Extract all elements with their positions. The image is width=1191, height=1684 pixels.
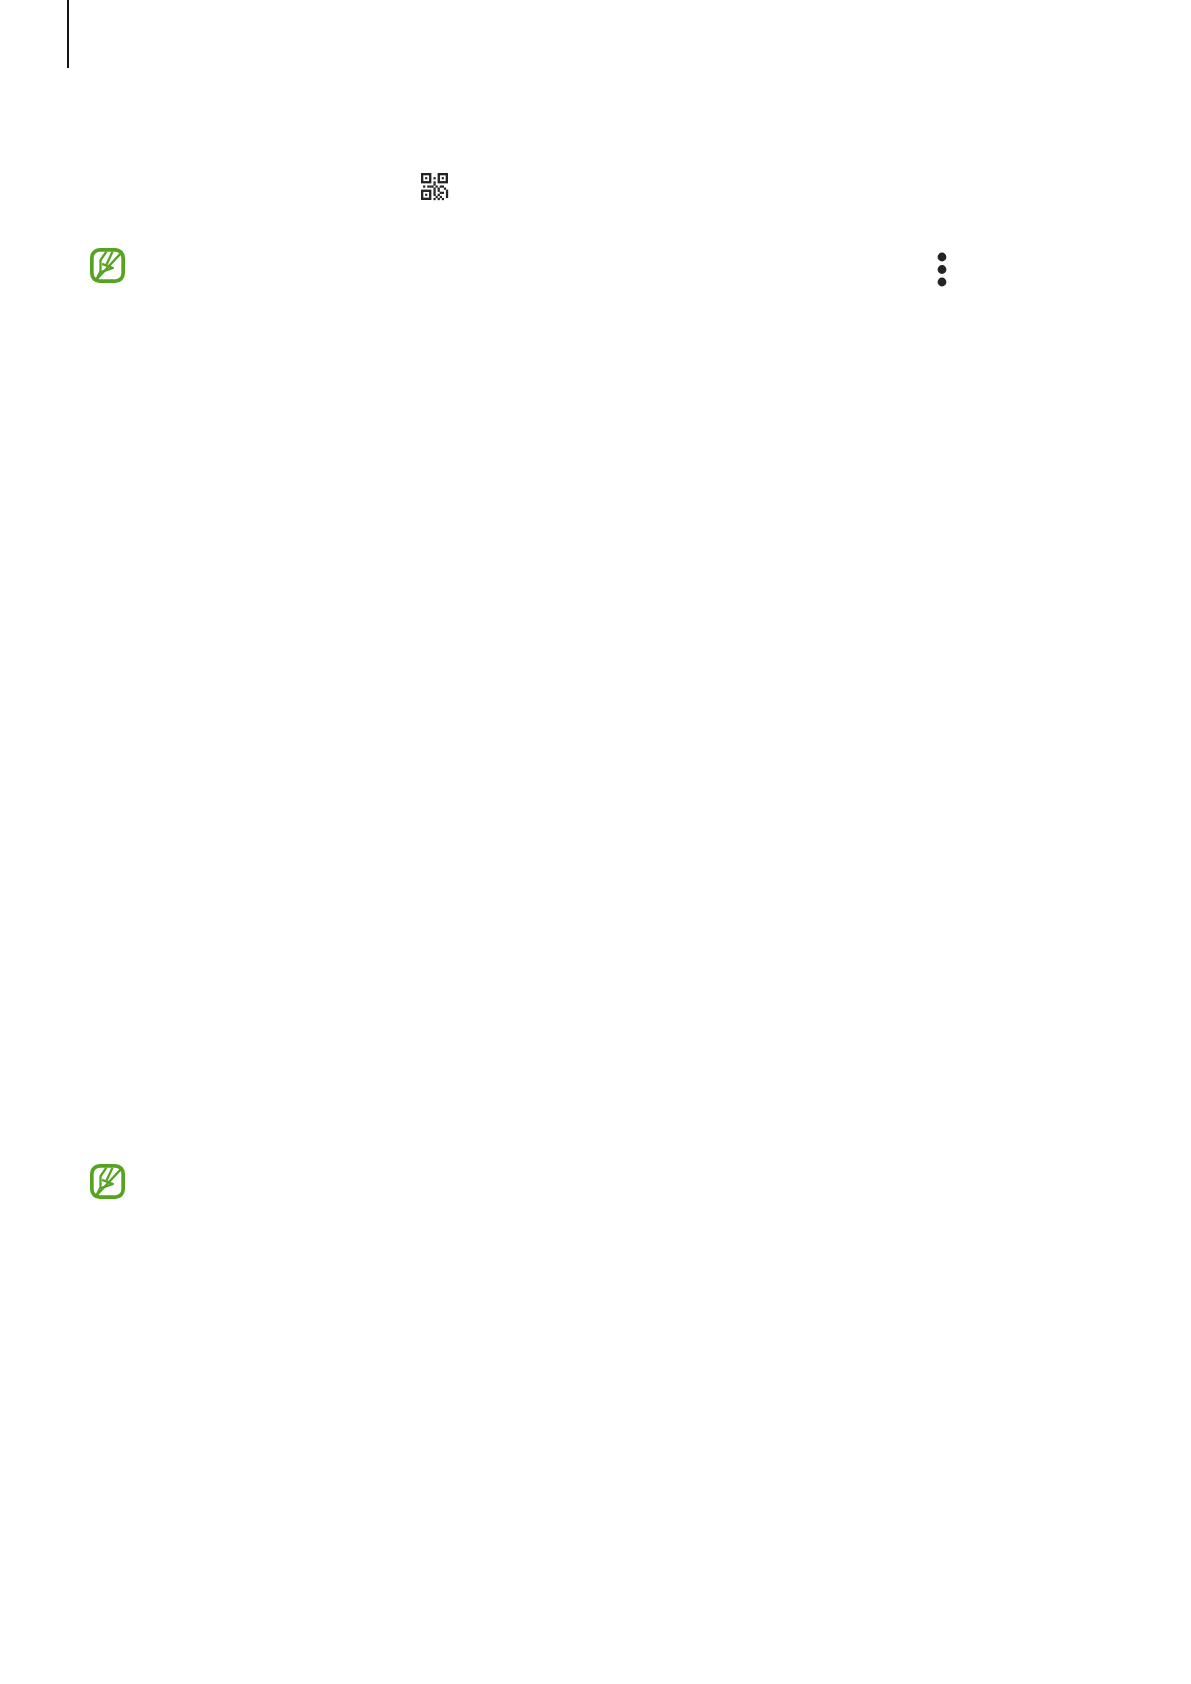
button[interactable]: More options [926, 241, 958, 273]
button[interactable]: Scan QR code [421, 173, 448, 200]
button[interactable]: Samsung Notes [90, 1164, 125, 1199]
button[interactable]: Samsung Notes [90, 248, 125, 283]
